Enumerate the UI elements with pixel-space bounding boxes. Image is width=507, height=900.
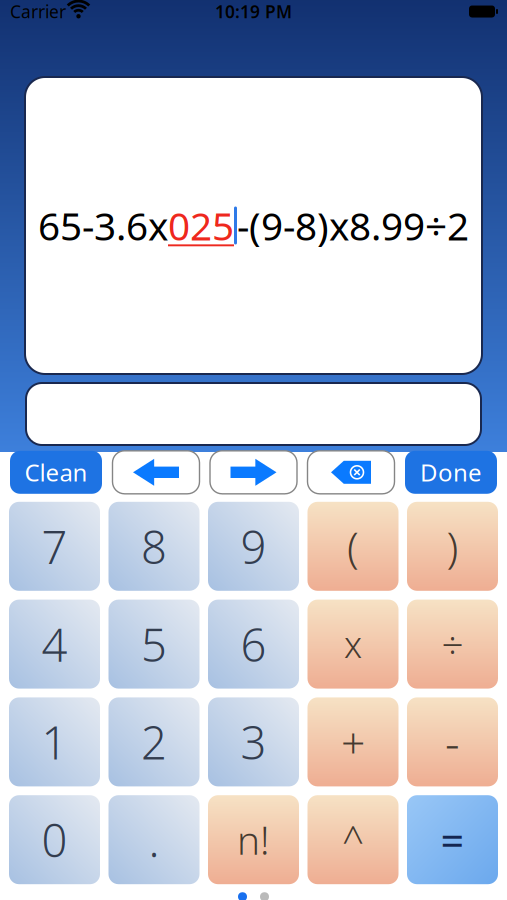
staticText: 6 — [240, 614, 266, 674]
button[interactable]: Backspace — [307, 451, 394, 494]
button[interactable]: 6 — [208, 600, 299, 689]
staticText: Carrier — [10, 0, 66, 23]
staticText: x — [344, 620, 362, 668]
button[interactable]: 5 — [108, 600, 199, 689]
staticText: . — [148, 810, 159, 870]
staticText: ( — [347, 518, 359, 575]
button[interactable]: 9 — [208, 502, 299, 591]
staticText: = — [440, 812, 464, 867]
staticText: 5 — [141, 614, 167, 674]
staticText: n! — [237, 814, 270, 865]
button[interactable]: . — [108, 795, 199, 884]
staticText: ^ — [342, 814, 364, 865]
button[interactable]: Done — [405, 451, 497, 494]
staticText: 65-3.6x — [38, 200, 168, 251]
button[interactable]: 1 — [9, 697, 100, 786]
button[interactable]: ( — [307, 502, 398, 591]
staticText: 8 — [141, 516, 167, 576]
button[interactable]: 7 — [9, 502, 100, 591]
staticText: 10:19 PM — [215, 0, 292, 23]
button[interactable]: Clean — [10, 451, 102, 494]
staticText: 2 — [141, 712, 167, 772]
button[interactable]: = — [407, 795, 498, 884]
staticText: 0 — [41, 810, 67, 870]
staticText: 3 — [240, 712, 266, 772]
staticText: -(9-8)x8.99÷2 — [237, 200, 469, 251]
button[interactable]: 2 — [108, 697, 199, 786]
button[interactable]: x — [307, 600, 398, 689]
button[interactable]: ) — [407, 502, 498, 591]
button[interactable]: ÷ — [407, 600, 498, 689]
staticText: ) — [446, 518, 458, 575]
button[interactable]: ^ — [307, 795, 398, 884]
staticText: 025 — [168, 200, 234, 251]
button[interactable]: Move cursor left — [112, 451, 199, 494]
button[interactable]: Move cursor right — [210, 451, 297, 494]
staticText: 7 — [41, 516, 67, 576]
button[interactable]: 0 — [9, 795, 100, 884]
staticText: 4 — [41, 614, 67, 674]
button[interactable]: + — [307, 697, 398, 786]
staticText: 1 — [41, 712, 67, 772]
button[interactable]: 4 — [9, 600, 100, 689]
staticText: ÷ — [441, 618, 463, 670]
staticText: 9 — [240, 516, 266, 576]
staticText: Clean — [24, 456, 87, 488]
staticText: - — [445, 712, 460, 772]
button[interactable]: 3 — [208, 697, 299, 786]
button[interactable]: - — [407, 697, 498, 786]
staticText: Done — [420, 456, 482, 488]
button[interactable]: 8 — [108, 502, 199, 591]
staticText: + — [341, 714, 365, 770]
button[interactable]: n! — [208, 795, 299, 884]
